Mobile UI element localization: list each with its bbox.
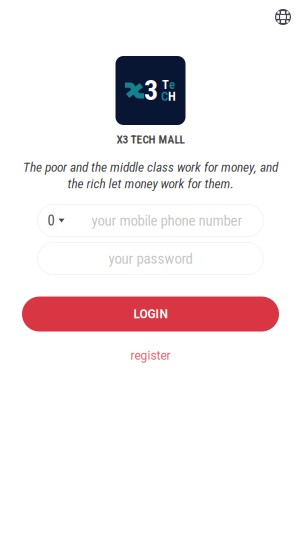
button[interactable]: 0: [37, 204, 91, 236]
staticText: the rich let money work for them.: [67, 176, 233, 191]
staticText: C: [161, 89, 168, 104]
staticText: register: [130, 348, 170, 363]
staticText: T: [162, 77, 169, 92]
button[interactable]: Language: [269, 3, 297, 31]
staticText: your password: [108, 250, 192, 267]
staticText: The poor and the middle class work for m…: [23, 159, 278, 175]
staticText: 3: [144, 74, 158, 107]
staticText: 0: [47, 212, 54, 229]
staticText: X3 TECH MALL: [116, 133, 184, 146]
button[interactable]: register: [125, 343, 175, 368]
staticText: LOGIN: [133, 307, 167, 321]
staticText: H: [168, 89, 176, 104]
staticText: e: [169, 77, 175, 92]
button[interactable]: LOGIN: [22, 296, 279, 331]
staticText: your mobile phone number: [91, 212, 242, 229]
